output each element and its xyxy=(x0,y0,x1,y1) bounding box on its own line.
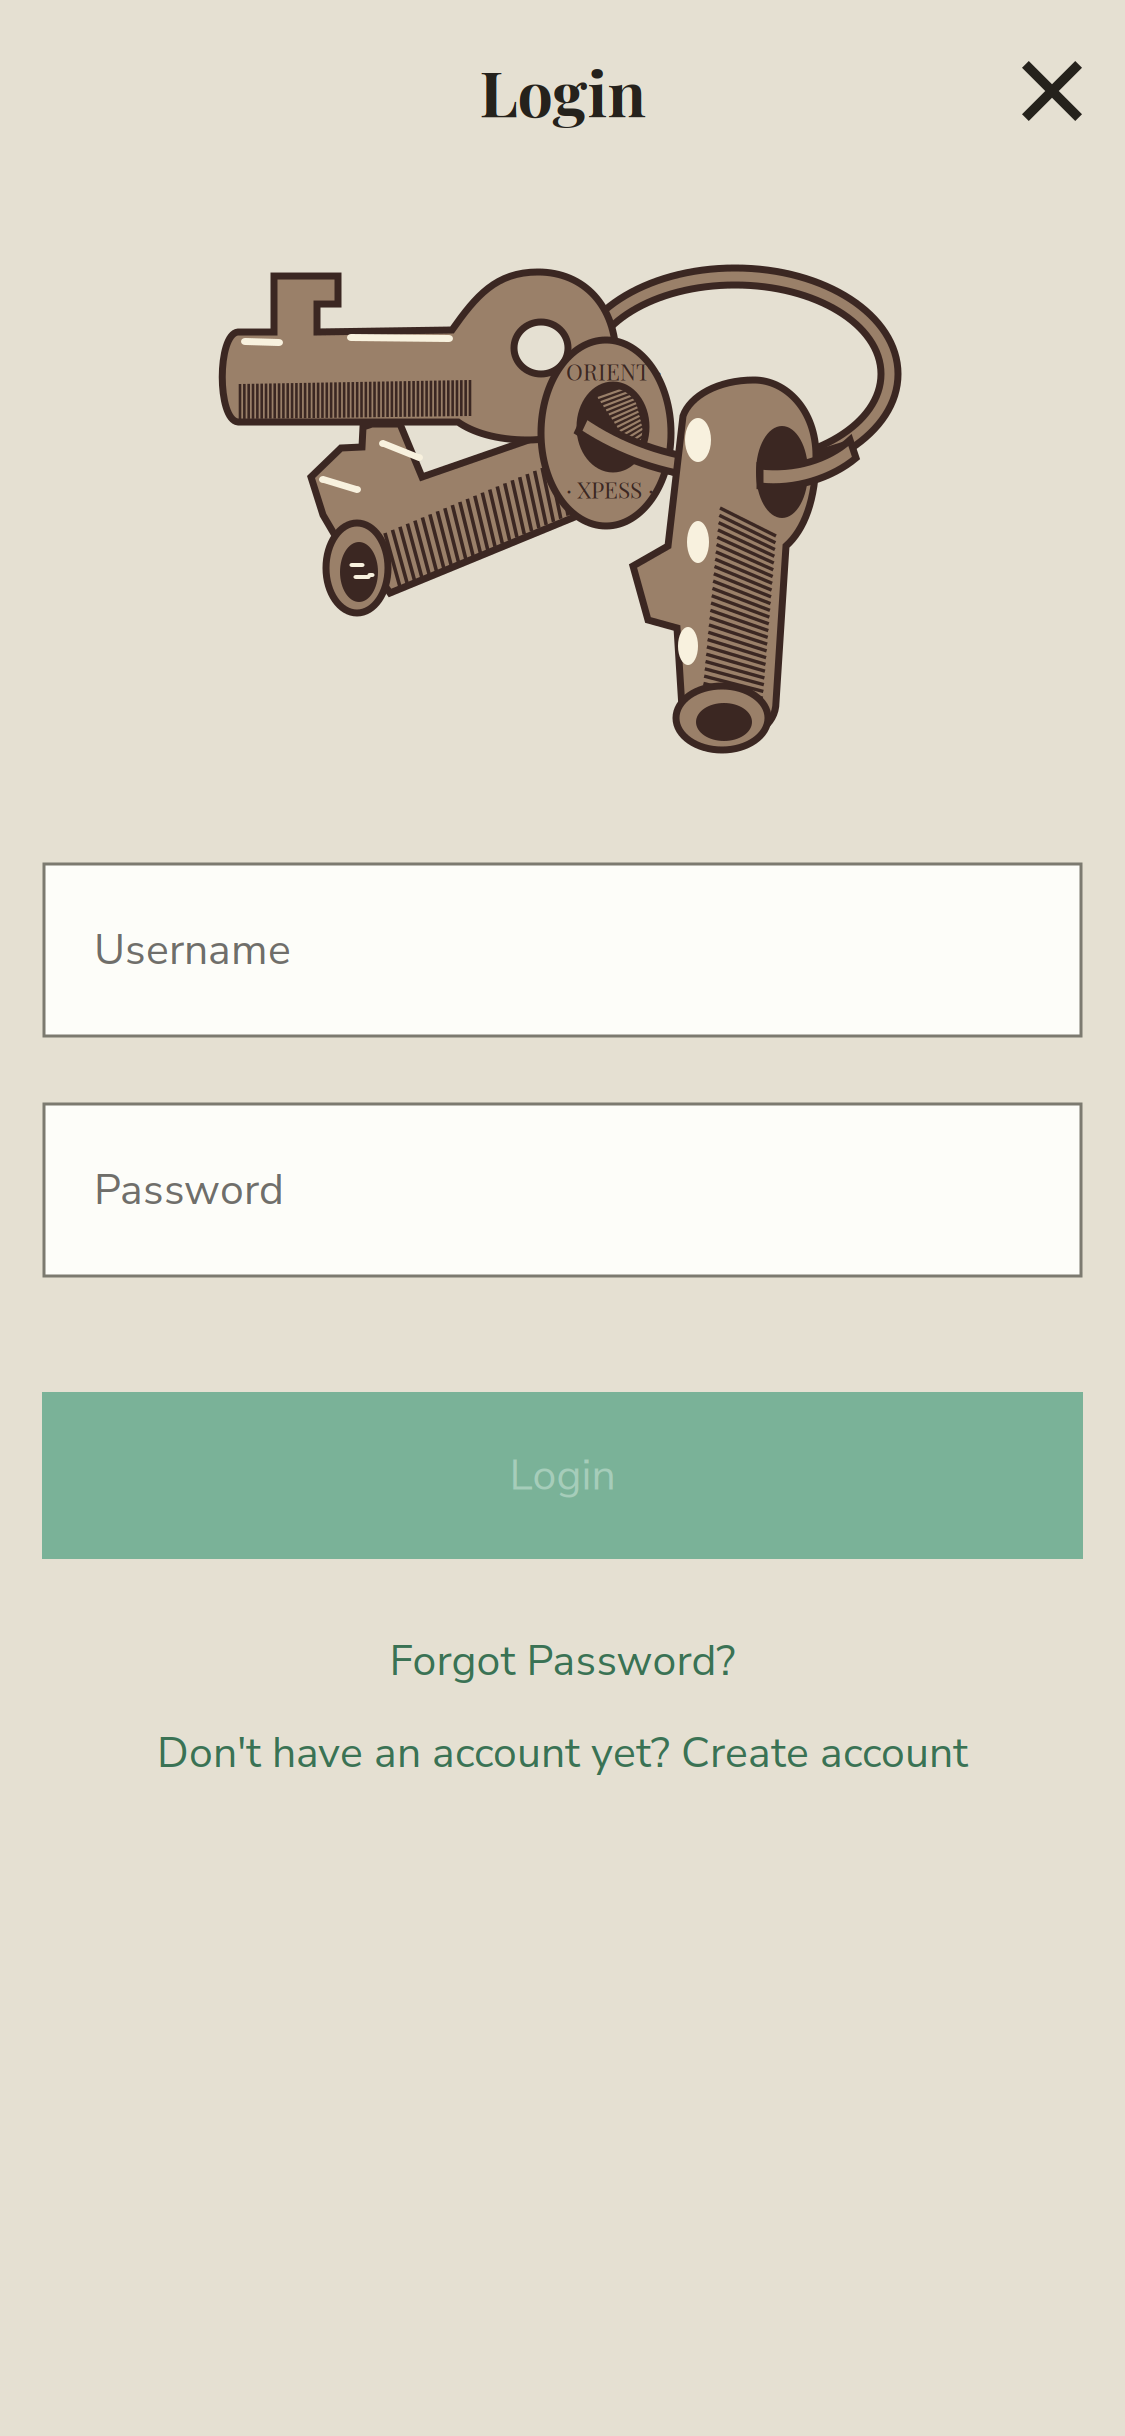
staticText: Login xyxy=(479,49,645,133)
button[interactable]: Don't have an account yet? Create accoun… xyxy=(0,1729,1125,1777)
button[interactable]: Close xyxy=(1022,61,1082,121)
staticText: Password xyxy=(94,1161,284,1219)
staticText: · ORIENT · xyxy=(554,356,662,386)
staticText: Login xyxy=(509,1446,615,1505)
staticText: Username xyxy=(94,921,291,979)
staticText: · XPESS · xyxy=(566,474,654,504)
staticText: Forgot Password? xyxy=(389,1632,735,1690)
button[interactable]: Forgot Password? xyxy=(0,1637,1125,1685)
staticText: Don't have an account yet? Create accoun… xyxy=(157,1724,968,1782)
